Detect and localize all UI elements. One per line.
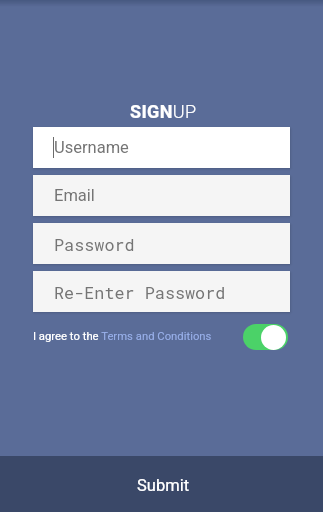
button[interactable]: Submit [0, 456, 323, 512]
button[interactable]: Password [33, 223, 290, 264]
staticText: SIGNUP [130, 101, 197, 122]
staticText: Username [54, 138, 129, 157]
staticText: I agree to the Terms and Conditions [33, 330, 212, 343]
button[interactable]: Agree to terms toggle [243, 324, 288, 350]
staticText: Submit [137, 476, 190, 495]
staticText: Email [54, 186, 95, 205]
button[interactable]: Email [33, 175, 290, 216]
button[interactable]: Re-Enter Password [33, 271, 290, 312]
staticText: Re-Enter Password [54, 281, 226, 303]
staticText: Password [54, 233, 135, 255]
button[interactable]: Username [33, 127, 290, 168]
